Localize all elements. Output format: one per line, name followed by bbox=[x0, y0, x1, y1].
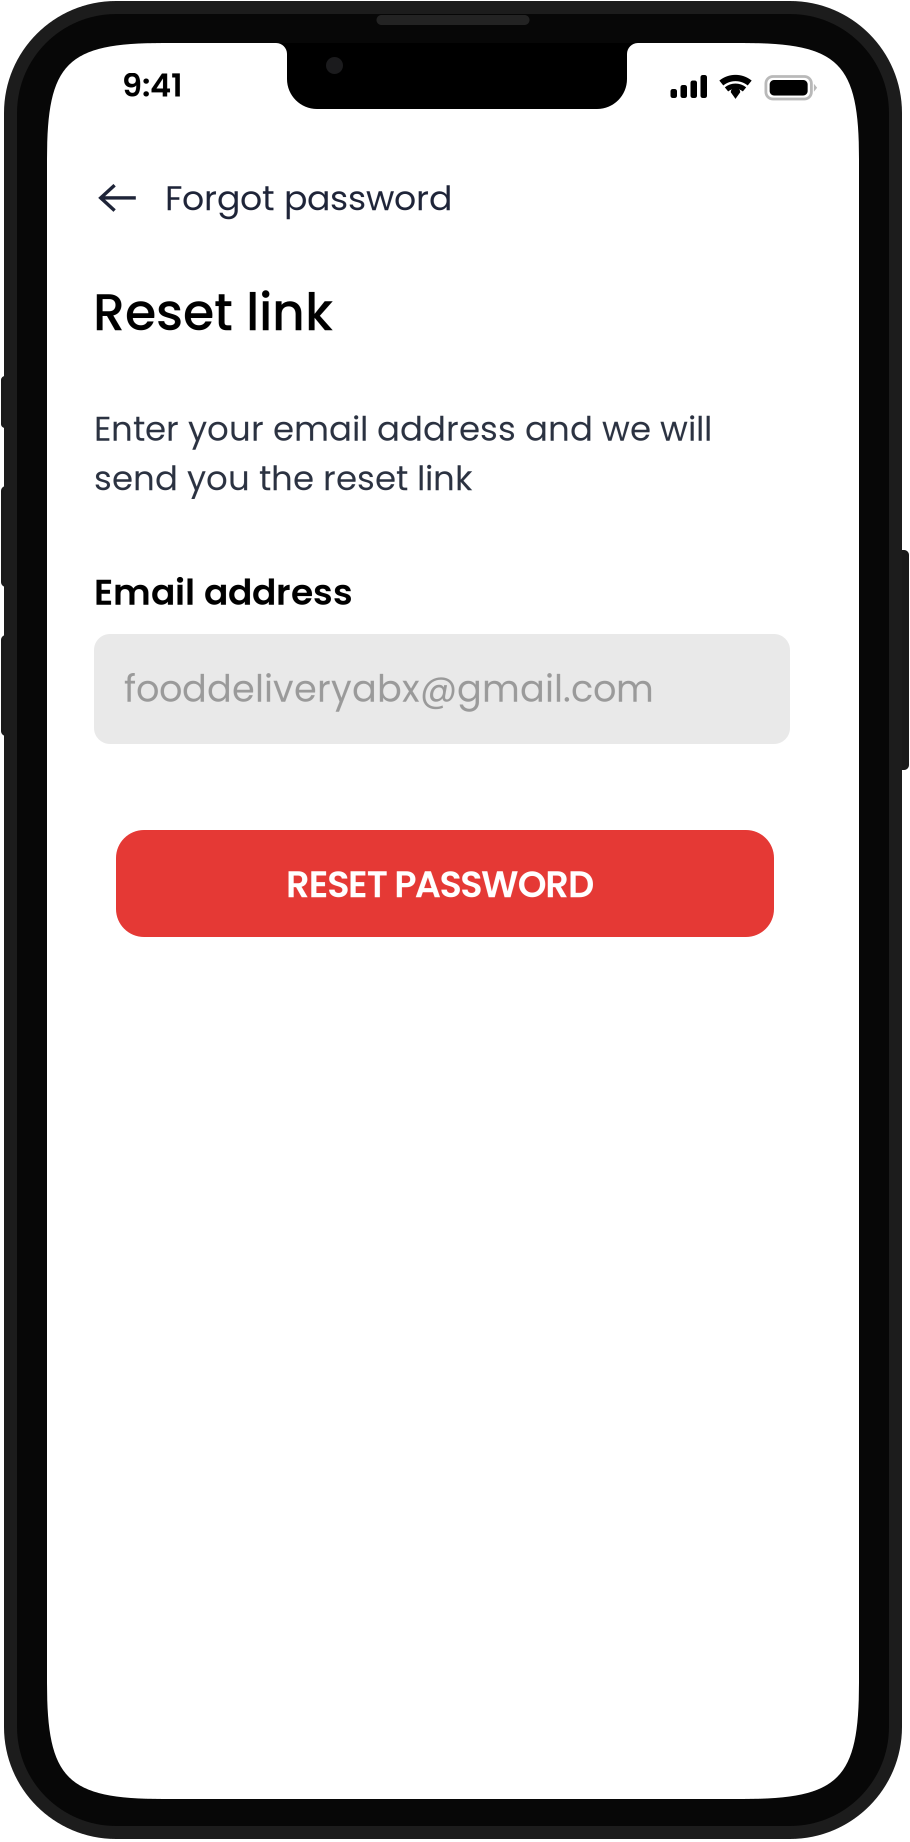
staticText: Email address bbox=[94, 567, 353, 617]
staticText: Forgot password bbox=[165, 174, 452, 222]
button[interactable]: RESET PASSWORD bbox=[116, 830, 774, 937]
button[interactable]: Forgot password bbox=[47, 158, 859, 238]
staticText: Reset link bbox=[93, 277, 333, 348]
button[interactable]: fooddeliveryabx@gmail.com bbox=[94, 634, 790, 744]
staticText: RESET PASSWORD bbox=[286, 859, 594, 910]
staticText: fooddeliveryabx@gmail.com bbox=[124, 663, 654, 715]
staticText: 9:41 bbox=[122, 63, 183, 108]
staticText: Enter your email address and we will sen… bbox=[94, 405, 712, 502]
